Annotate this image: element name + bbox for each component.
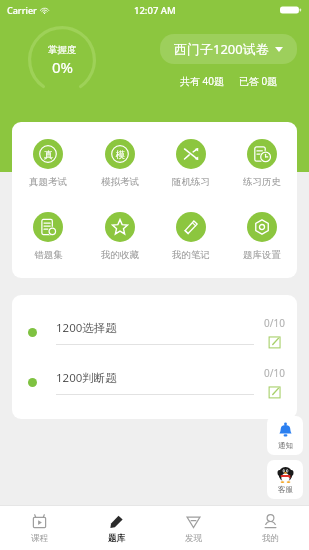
button[interactable]: 模	[84, 134, 155, 193]
button[interactable]: 题库设置	[226, 207, 297, 266]
staticText: 错题集	[34, 249, 63, 261]
staticText: 课程	[31, 533, 48, 544]
staticText: 已答 0题	[239, 74, 278, 88]
staticText: 随机练习	[172, 176, 210, 188]
button[interactable]: 题库	[78, 506, 155, 550]
staticText: 通知	[278, 441, 293, 450]
staticText: 我的	[262, 533, 279, 544]
staticText: 我的笔记	[172, 249, 210, 261]
staticText: Carrier	[7, 4, 37, 16]
button[interactable]: 我的笔记	[155, 207, 226, 266]
staticText: 0%	[52, 57, 74, 77]
staticText: 真	[44, 149, 53, 160]
staticText: 我的收藏	[101, 249, 139, 261]
staticText: 共有 40题	[180, 74, 225, 88]
button[interactable]: 我的收藏	[84, 207, 155, 266]
staticText: 0/10	[264, 366, 285, 380]
button[interactable]: 错题集	[12, 207, 84, 266]
staticText: 练习历史	[243, 176, 281, 188]
staticText: 0/10	[264, 316, 285, 330]
staticText: 模	[116, 149, 125, 160]
button[interactable]: 通知	[267, 416, 303, 455]
staticText: 掌握度	[48, 44, 77, 56]
staticText: 12:07 AM	[134, 4, 176, 17]
staticText: 模拟考试	[101, 176, 139, 188]
button[interactable]: 西门子1200试卷	[160, 34, 297, 64]
button[interactable]: 客服	[267, 460, 303, 499]
staticText: 1200判断题	[56, 370, 117, 386]
staticText: 发现	[185, 533, 202, 544]
button[interactable]: 1200选择题	[12, 307, 297, 357]
button[interactable]: 真	[12, 134, 84, 193]
staticText: 西门子1200试卷	[174, 40, 269, 58]
staticText: 真题考试	[29, 176, 67, 188]
button[interactable]: 编辑	[268, 335, 282, 349]
button[interactable]: 发现	[155, 506, 232, 550]
staticText: 1200选择题	[56, 320, 117, 336]
staticText: 题库	[108, 533, 125, 544]
button[interactable]: 随机练习	[155, 134, 226, 193]
button[interactable]: 编辑	[268, 385, 282, 399]
button[interactable]: 课程	[0, 506, 78, 550]
button[interactable]: 1200判断题	[12, 357, 297, 407]
staticText: 客服	[278, 485, 293, 494]
button[interactable]: 我的	[232, 506, 309, 550]
button[interactable]: 练习历史	[226, 134, 297, 193]
staticText: 题库设置	[243, 249, 281, 261]
